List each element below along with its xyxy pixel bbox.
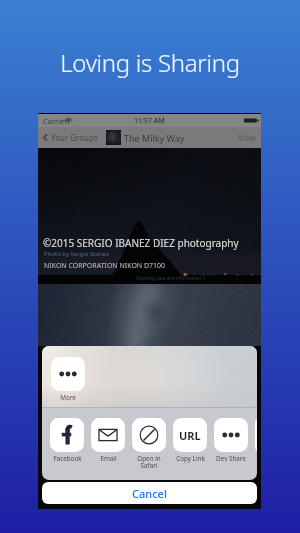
staticText: Loving is Sharing xyxy=(0,46,300,79)
button[interactable]: Facebook xyxy=(50,418,84,463)
staticText: Open in Safari xyxy=(137,454,161,470)
staticText: Shooting data and information © xyxy=(136,275,207,281)
staticText: View xyxy=(238,132,256,143)
button[interactable]: Open in Safari xyxy=(132,418,166,470)
staticText: Copy Link xyxy=(176,454,205,463)
button[interactable]: View xyxy=(238,132,256,143)
staticText: More xyxy=(60,393,76,402)
button[interactable]: Email xyxy=(91,418,125,463)
staticText: ©2015 SERGIO IBANEZ DIEZ photography xyxy=(43,236,239,250)
button[interactable]: Dev Share xyxy=(214,418,248,463)
staticText: Your Groups xyxy=(51,132,98,143)
staticText: Email xyxy=(100,454,117,463)
button[interactable]: More xyxy=(51,357,85,402)
staticText: Photo by Sergio Ibanez xyxy=(44,250,109,258)
button[interactable]: Your Groups xyxy=(41,132,98,143)
staticText: Facebook xyxy=(53,454,82,463)
staticText: NIKON CORPORATION NIKON D7100 xyxy=(44,261,166,271)
button[interactable]: Cancel xyxy=(42,482,257,504)
staticText: Carrier xyxy=(43,116,68,126)
staticText: Cancel xyxy=(132,486,167,501)
staticText: The Milky Way xyxy=(124,132,185,144)
button[interactable]: URL xyxy=(173,418,207,463)
staticText: Dev Share xyxy=(216,454,246,463)
staticText: URL xyxy=(179,428,201,443)
staticText: 11:57 AM xyxy=(134,116,165,126)
